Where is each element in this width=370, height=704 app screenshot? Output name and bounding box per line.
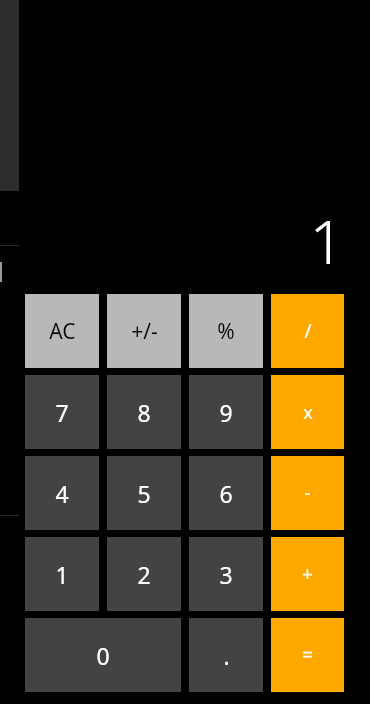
button[interactable]: 1 (25, 537, 99, 611)
staticText: 2 (137, 559, 151, 590)
button[interactable]: 9 (189, 375, 263, 449)
staticText: 1 (55, 559, 69, 590)
button[interactable]: . (189, 618, 263, 692)
staticText: = (302, 642, 313, 668)
staticText: 0 (96, 640, 110, 671)
staticText: 3 (219, 559, 233, 590)
button[interactable]: + (271, 537, 344, 611)
staticText: +/- (131, 317, 158, 346)
staticText: + (302, 561, 313, 587)
button[interactable]: = (271, 618, 344, 692)
button[interactable]: / (271, 294, 344, 368)
button[interactable]: % (189, 294, 263, 368)
staticText: x (303, 400, 313, 425)
button[interactable]: 8 (107, 375, 181, 449)
button[interactable]: 5 (107, 456, 181, 530)
button[interactable]: 4 (25, 456, 99, 530)
staticText: 8 (137, 397, 151, 428)
staticText: / (304, 318, 312, 344)
button[interactable]: - (271, 456, 344, 530)
staticText: AC (49, 317, 76, 346)
button[interactable]: 2 (107, 537, 181, 611)
button[interactable]: 7 (25, 375, 99, 449)
button[interactable]: AC (25, 294, 99, 368)
staticText: 7 (55, 397, 69, 428)
staticText: % (217, 317, 235, 346)
button[interactable]: x (271, 375, 344, 449)
staticText: 4 (55, 478, 69, 509)
button[interactable]: 0 (25, 618, 181, 692)
staticText: . (223, 640, 230, 671)
button[interactable]: 3 (189, 537, 263, 611)
button[interactable]: 6 (189, 456, 263, 530)
staticText: 1 (309, 200, 344, 282)
staticText: 9 (219, 397, 233, 428)
staticText: 6 (219, 478, 233, 509)
staticText: - (304, 480, 311, 506)
button[interactable]: +/- (107, 294, 181, 368)
staticText: 5 (137, 478, 151, 509)
